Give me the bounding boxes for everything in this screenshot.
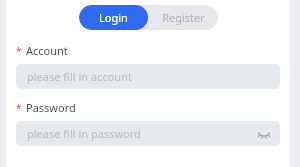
staticText: Password	[26, 100, 76, 115]
staticText: please fill in password	[27, 126, 141, 141]
staticText: please fill in account	[27, 69, 132, 84]
button[interactable]: please fill in account	[16, 64, 280, 89]
staticText: *	[16, 101, 22, 115]
button[interactable]: Register	[148, 5, 218, 30]
button[interactable]: Login	[79, 5, 148, 30]
staticText: Account	[26, 43, 68, 58]
staticText: Login	[99, 10, 128, 25]
button[interactable]: please fill in password	[16, 121, 280, 146]
staticText: Register	[162, 10, 205, 25]
button[interactable]: Show password	[256, 126, 272, 142]
staticText: *	[16, 44, 22, 58]
